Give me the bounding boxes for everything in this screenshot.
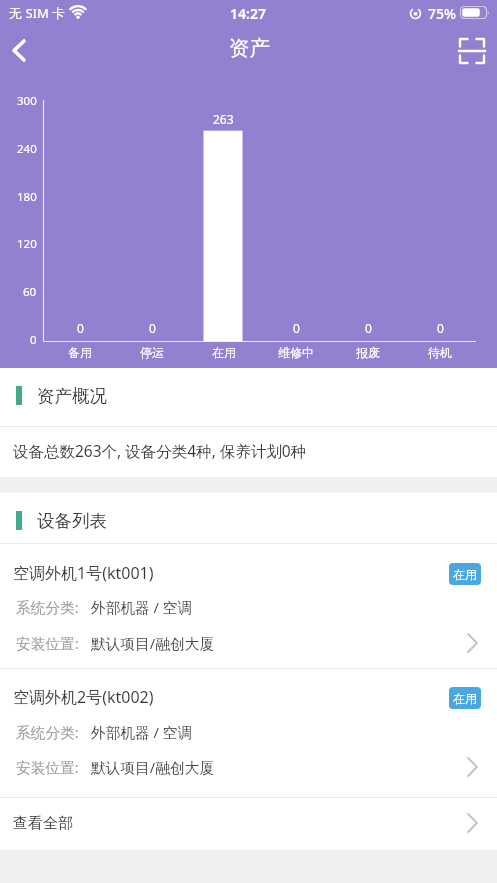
staticText: 空调外机1号(kt001)	[13, 562, 154, 584]
staticText: 300	[17, 93, 37, 109]
staticText: 120	[17, 236, 37, 252]
staticText: 待机	[428, 345, 452, 360]
staticText: 资产	[229, 35, 270, 61]
button[interactable]	[0, 30, 44, 70]
staticText: 安装位置:	[16, 757, 83, 777]
button[interactable]	[0, 798, 497, 850]
staticText: 240	[17, 141, 37, 157]
staticText: 0	[77, 320, 84, 336]
staticText: 外部机器 / 空调	[91, 722, 193, 742]
staticText: 0	[293, 320, 300, 336]
staticText: 0	[365, 320, 372, 336]
staticText: 0	[30, 332, 37, 348]
staticText: 0	[437, 320, 444, 336]
staticText: 180	[17, 189, 37, 205]
staticText: 60	[23, 284, 37, 300]
staticText: 默认项目/融创大厦	[91, 633, 214, 653]
staticText: 空调外机2号(kt002)	[13, 686, 154, 708]
staticText: 维修中	[278, 345, 314, 360]
staticText: 默认项目/融创大厦	[91, 757, 214, 777]
staticText: 在用	[212, 345, 236, 360]
staticText: 无 SIM 卡	[9, 4, 66, 22]
staticText: 0	[149, 320, 156, 336]
staticText: 在用	[453, 567, 477, 582]
staticText: 系统分类:	[16, 722, 83, 742]
staticText: 263	[213, 111, 234, 127]
staticText: 设备列表	[37, 510, 107, 532]
staticText: 资产概况	[37, 385, 107, 407]
staticText: 设备总数263个, 设备分类4种, 保养计划0种	[13, 440, 307, 461]
staticText: 系统分类:	[16, 597, 83, 617]
staticText: 75%	[428, 4, 456, 23]
staticText: 备用	[68, 345, 92, 360]
button[interactable]	[452, 32, 492, 70]
staticText: 14:27	[230, 4, 266, 23]
staticText: 报废	[356, 345, 380, 360]
staticText: 外部机器 / 空调	[91, 597, 193, 617]
button[interactable]	[0, 669, 497, 797]
staticText: 停运	[140, 345, 164, 360]
staticText: 在用	[453, 691, 477, 706]
staticText: 安装位置:	[16, 633, 83, 653]
button[interactable]	[0, 544, 497, 668]
staticText: 查看全部	[13, 814, 73, 833]
